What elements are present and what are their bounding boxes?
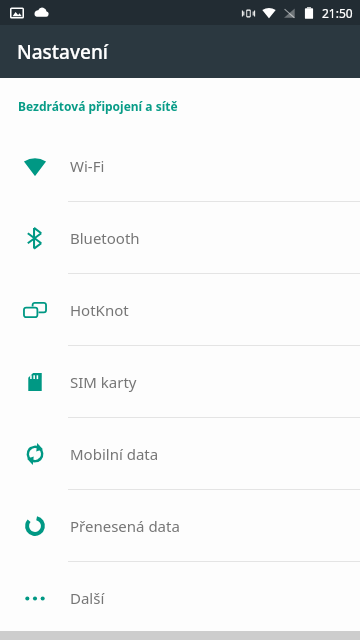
other: HotKnot bbox=[23, 298, 47, 322]
button[interactable]: SIM karty bbox=[0, 346, 360, 417]
staticText: 21:50 bbox=[322, 5, 353, 21]
staticText: Bluetooth bbox=[70, 228, 140, 248]
other: Wi-Fi bbox=[23, 154, 47, 178]
button[interactable]: Mobilní data bbox=[0, 418, 360, 489]
other: Bluetooth bbox=[23, 226, 47, 250]
button[interactable]: Další bbox=[0, 562, 360, 633]
staticText: Další bbox=[70, 588, 105, 608]
staticText: Bezdrátová připojení a sítě bbox=[18, 98, 178, 114]
staticText: Nastavení bbox=[17, 39, 108, 65]
other: Další bbox=[23, 586, 47, 610]
staticText: SIM karty bbox=[70, 372, 137, 392]
other: SIM karty bbox=[23, 370, 47, 394]
button[interactable]: Wi-Fi bbox=[0, 130, 360, 201]
staticText: Mobilní data bbox=[70, 444, 159, 464]
other: Mobilní data bbox=[23, 442, 47, 466]
button[interactable]: Přenesená data bbox=[0, 490, 360, 561]
other: Přenesená data bbox=[23, 514, 47, 538]
button[interactable]: HotKnot bbox=[0, 274, 360, 345]
staticText: Wi-Fi bbox=[70, 156, 105, 176]
staticText: Přenesená data bbox=[70, 516, 180, 536]
button[interactable]: Bluetooth bbox=[0, 202, 360, 273]
staticText: HotKnot bbox=[70, 300, 129, 320]
